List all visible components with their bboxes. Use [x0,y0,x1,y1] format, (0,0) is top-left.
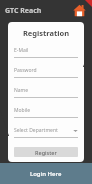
button[interactable]: Home [73,4,86,17]
staticText: GTC Reach [5,6,42,16]
staticText: Select Department [14,127,73,134]
button[interactable]: Register [14,147,78,157]
staticText: E-Mail [14,47,78,54]
staticText: Register [35,149,57,156]
staticText: Password [14,67,78,74]
button[interactable]: Mobile [14,107,78,118]
button[interactable]: Password [14,67,78,78]
button[interactable]: E-Mail [14,47,78,58]
button[interactable]: Login Here [0,163,92,184]
button[interactable]: Select Department [14,127,78,138]
staticText: Registration [14,28,78,38]
button[interactable]: Name [14,87,78,98]
staticText: Name [14,87,78,94]
staticText: Mobile [14,107,78,114]
staticText: Login Here [30,170,62,178]
